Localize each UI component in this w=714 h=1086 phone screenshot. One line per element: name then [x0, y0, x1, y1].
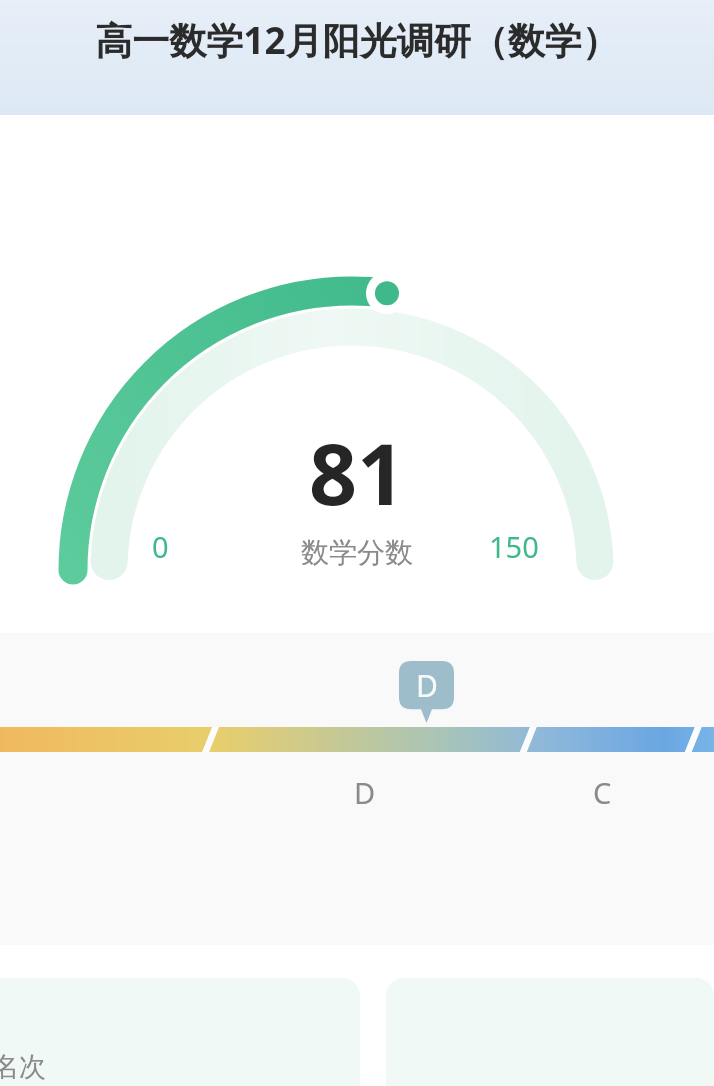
staticText: 0 [152, 527, 169, 566]
staticText: 81 [309, 415, 406, 529]
button[interactable]: 名次 [0, 978, 360, 1086]
button[interactable]: 高一数学12月阳光调研（数学） [0, 0, 714, 115]
staticText: 150 [489, 527, 539, 566]
button[interactable]: 当前等级 D [399, 661, 454, 723]
staticText: 名次 [0, 1050, 46, 1084]
staticText: D [354, 773, 376, 812]
staticText: C [593, 773, 612, 812]
staticText: 数学分数 [301, 535, 413, 570]
staticText: D [416, 665, 438, 706]
staticText: 高一数学12月阳光调研（数学） [95, 14, 619, 65]
